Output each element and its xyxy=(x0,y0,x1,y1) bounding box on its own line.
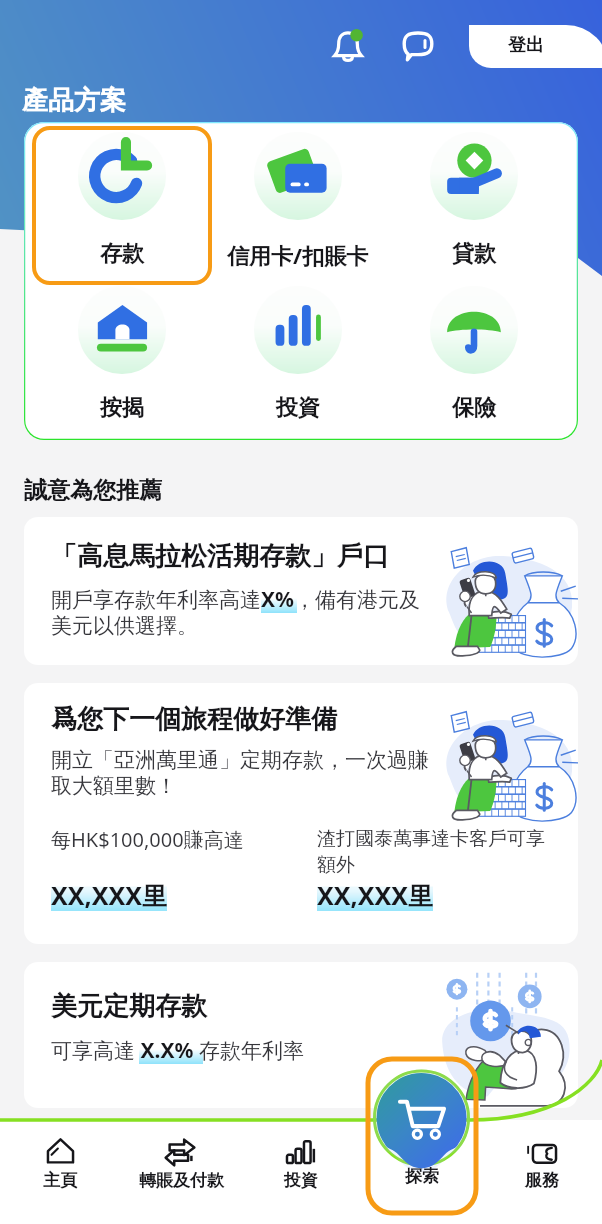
staticText: XX,XXX里 xyxy=(51,878,167,912)
button[interactable]: 探索 xyxy=(362,1064,482,1168)
staticText: 貸款 xyxy=(452,240,496,268)
button[interactable]: 服務 xyxy=(482,1134,602,1191)
staticText: 開立「亞洲萬里通」定期存款，一次過賺 取大額里數！ xyxy=(51,747,429,800)
button[interactable]: 登出 xyxy=(469,25,602,68)
staticText: 探索 xyxy=(405,1166,439,1187)
staticText: 按揭 xyxy=(100,394,144,422)
button[interactable]: Notifications xyxy=(324,22,372,70)
staticText: 可享高達 X.X% 存款年利率 xyxy=(51,1036,304,1065)
staticText: 渣打國泰萬事達卡客戶可享 額外 xyxy=(317,827,545,876)
staticText: 爲您下一個旅程做好準備 xyxy=(51,703,337,736)
staticText: 信用卡/扣賬卡 xyxy=(227,240,369,270)
button[interactable]: 保險 xyxy=(386,282,562,437)
button[interactable]: 轉賬及付款 xyxy=(121,1134,241,1191)
staticText: XX,XXX里 xyxy=(317,878,433,912)
button[interactable]: 存款 xyxy=(34,128,210,283)
button[interactable]: 貸款 xyxy=(386,128,562,283)
staticText: 每HK$100,000賺高達 xyxy=(51,826,244,853)
staticText: 誠意為您推薦 xyxy=(24,476,162,505)
staticText: 「高息馬拉松活期存款」戶口 xyxy=(51,540,389,573)
button[interactable]: 美元定期存款 xyxy=(24,962,578,1108)
button[interactable]: 「高息馬拉松活期存款」戶口 xyxy=(24,517,578,665)
staticText: 登出 xyxy=(508,34,544,57)
staticText: 服務 xyxy=(525,1170,559,1191)
staticText: 轉賬及付款 xyxy=(139,1170,224,1191)
button[interactable]: Messages xyxy=(394,22,442,70)
staticText: 美元定期存款 xyxy=(51,990,207,1023)
staticText: 主頁 xyxy=(43,1170,77,1191)
staticText: 存款 xyxy=(100,240,144,268)
button[interactable]: 按揭 xyxy=(34,282,210,437)
staticText: 保險 xyxy=(452,394,496,422)
button[interactable]: 投資 xyxy=(210,282,386,437)
staticText: 投資 xyxy=(276,394,320,422)
button[interactable]: 主頁 xyxy=(0,1134,120,1191)
staticText: 投資 xyxy=(284,1170,318,1191)
button[interactable]: 爲您下一個旅程做好準備 xyxy=(24,683,578,944)
staticText: 產品方案 xyxy=(22,84,126,117)
staticText: 開戶享存款年利率高達X%，備有港元及 美元以供選擇。 xyxy=(51,585,421,640)
button[interactable]: 投資 xyxy=(241,1134,361,1191)
button[interactable]: 信用卡/扣賬卡 xyxy=(210,128,386,283)
